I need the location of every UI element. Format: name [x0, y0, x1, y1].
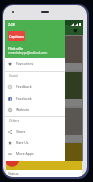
staticText: More Apps	[16, 151, 34, 156]
staticText: mmmbdapps@outlook.com	[8, 51, 48, 55]
staticText: Share	[16, 129, 26, 134]
button[interactable]: More Apps	[5, 148, 65, 159]
staticText: 2:28	[8, 22, 15, 27]
staticText: Feedback	[16, 84, 32, 89]
staticText: Flick ville	[8, 46, 23, 51]
staticText: Captions	[8, 64, 23, 69]
button[interactable]: Favourites	[5, 58, 65, 69]
button[interactable]: Website	[5, 104, 65, 115]
staticText: Status	[8, 171, 19, 176]
button[interactable]: Status	[6, 143, 82, 177]
button[interactable]: Captions	[6, 36, 82, 70]
button[interactable]: Feedback	[5, 81, 65, 92]
staticText: Website	[16, 107, 30, 112]
button[interactable]: Facebook	[5, 93, 65, 104]
staticText: Captions	[9, 34, 25, 39]
button[interactable]: Favourites	[72, 27, 78, 33]
staticText: Quotes	[8, 100, 21, 105]
button[interactable]: Captions	[6, 108, 82, 142]
button[interactable]: Quotes	[6, 72, 82, 106]
button[interactable]: Share	[5, 126, 65, 137]
staticText: Social	[9, 74, 18, 78]
staticText: Facebook	[16, 96, 32, 101]
staticText: Favourites	[16, 61, 34, 66]
button[interactable]: Rate Us	[5, 137, 65, 148]
staticText: Rate Us	[16, 140, 29, 145]
staticText: Others	[9, 119, 20, 123]
